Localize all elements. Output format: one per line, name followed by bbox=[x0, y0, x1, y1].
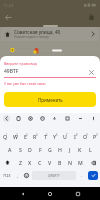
button[interactable]: Clear bbox=[87, 68, 96, 77]
button[interactable]: O bbox=[80, 130, 90, 143]
staticText: O bbox=[83, 133, 88, 140]
staticText: Q bbox=[3, 133, 8, 140]
staticText: 3 bbox=[26, 133, 28, 137]
button[interactable]: Translate bbox=[61, 113, 74, 124]
staticText: ?123 bbox=[3, 173, 11, 178]
staticText: QWERTY bbox=[48, 174, 60, 178]
button[interactable]: Back bbox=[18, 189, 28, 199]
button[interactable]: R bbox=[30, 130, 40, 143]
button[interactable]: K bbox=[75, 143, 85, 156]
staticText: У вас уже был такой заказ bbox=[4, 81, 46, 85]
button[interactable]: M bbox=[75, 156, 85, 169]
button[interactable]: Previous bbox=[0, 113, 12, 124]
button[interactable]: Y bbox=[50, 130, 60, 143]
staticText: Введите промокод bbox=[4, 61, 37, 66]
button[interactable]: A bbox=[5, 143, 15, 156]
button[interactable]: Q bbox=[0, 130, 10, 143]
staticText: , bbox=[17, 173, 19, 179]
button[interactable]: , bbox=[13, 171, 22, 180]
button[interactable]: H bbox=[55, 143, 65, 156]
button[interactable]: Sticker bbox=[36, 113, 48, 124]
button[interactable]: F bbox=[35, 143, 45, 156]
staticText: D bbox=[28, 146, 32, 153]
button[interactable]: Recents bbox=[73, 189, 83, 199]
staticText: Применить bbox=[38, 97, 63, 103]
button[interactable]: Z bbox=[15, 156, 25, 169]
button[interactable]: L bbox=[85, 143, 95, 156]
staticText: M bbox=[78, 159, 83, 166]
button[interactable]: Settings bbox=[24, 113, 36, 124]
staticText: K bbox=[78, 146, 82, 153]
staticText: F bbox=[39, 146, 42, 153]
button[interactable]: ?123 bbox=[0, 171, 13, 180]
staticText: S bbox=[19, 146, 22, 153]
button[interactable]: X bbox=[25, 156, 35, 169]
button[interactable]: Emoji bbox=[22, 171, 31, 180]
staticText: 9 bbox=[86, 133, 88, 137]
button[interactable]: Советская улица, 40 bbox=[1, 27, 99, 41]
staticText: Z bbox=[19, 159, 22, 166]
button[interactable]: Применить bbox=[4, 92, 96, 107]
staticText: E bbox=[24, 133, 27, 140]
staticText: A bbox=[8, 146, 12, 153]
staticText: 8 bbox=[76, 133, 78, 137]
staticText: P bbox=[93, 133, 97, 140]
button[interactable]: Shift bbox=[0, 156, 15, 169]
button[interactable]: D bbox=[25, 143, 35, 156]
staticText: 6 bbox=[56, 133, 58, 137]
staticText: U bbox=[63, 133, 67, 140]
staticText: . bbox=[81, 173, 83, 179]
staticText: 11:23 bbox=[3, 3, 14, 8]
button[interactable]: Back bbox=[2, 11, 15, 24]
button[interactable]: Backspace bbox=[85, 156, 100, 169]
button[interactable]: T bbox=[40, 130, 50, 143]
button[interactable]: N bbox=[65, 156, 75, 169]
staticText: N bbox=[68, 159, 73, 166]
staticText: 1 bbox=[6, 133, 8, 137]
button[interactable]: W bbox=[10, 130, 20, 143]
staticText: C bbox=[38, 159, 42, 166]
button[interactable]: V bbox=[45, 156, 55, 169]
staticText: H bbox=[58, 146, 62, 153]
button[interactable]: Home bbox=[45, 189, 55, 199]
button[interactable]: Mic bbox=[48, 113, 61, 124]
button[interactable]: S bbox=[15, 143, 25, 156]
staticText: 49BTF bbox=[4, 68, 19, 75]
staticText: B bbox=[58, 159, 62, 166]
staticText: 5 bbox=[46, 133, 48, 137]
staticText: R bbox=[33, 133, 37, 140]
staticText: Комментарий к заказу bbox=[14, 35, 49, 39]
button[interactable]: P bbox=[90, 130, 100, 143]
staticText: V bbox=[48, 159, 52, 166]
button[interactable]: Enter bbox=[88, 171, 98, 180]
staticText: G bbox=[48, 146, 52, 153]
staticText: T bbox=[44, 133, 47, 140]
button[interactable]: More bbox=[87, 113, 100, 124]
button[interactable]: G bbox=[45, 143, 55, 156]
staticText: Советская улица, 40 bbox=[14, 29, 61, 35]
button[interactable]: QWERTY bbox=[32, 171, 76, 180]
staticText: L bbox=[89, 146, 92, 153]
staticText: J bbox=[69, 146, 71, 153]
button[interactable]: Clipboard bbox=[12, 113, 24, 124]
button[interactable]: U bbox=[60, 130, 70, 143]
staticText: 4 bbox=[36, 133, 38, 137]
button[interactable]: Shopping bag bbox=[85, 11, 98, 24]
staticText: Y bbox=[53, 133, 57, 140]
staticText: 0 bbox=[96, 133, 98, 137]
button[interactable]: J bbox=[65, 143, 75, 156]
staticText: X bbox=[28, 159, 32, 166]
staticText: W bbox=[13, 133, 18, 140]
staticText: 2 bbox=[16, 133, 18, 137]
button[interactable]: B bbox=[55, 156, 65, 169]
button[interactable]: Theme bbox=[74, 113, 87, 124]
button[interactable]: . bbox=[77, 171, 86, 180]
button[interactable]: C bbox=[35, 156, 45, 169]
button[interactable]: I bbox=[70, 130, 80, 143]
staticText: I bbox=[74, 133, 76, 140]
button[interactable]: E bbox=[20, 130, 30, 143]
staticText: 7 bbox=[66, 133, 68, 137]
